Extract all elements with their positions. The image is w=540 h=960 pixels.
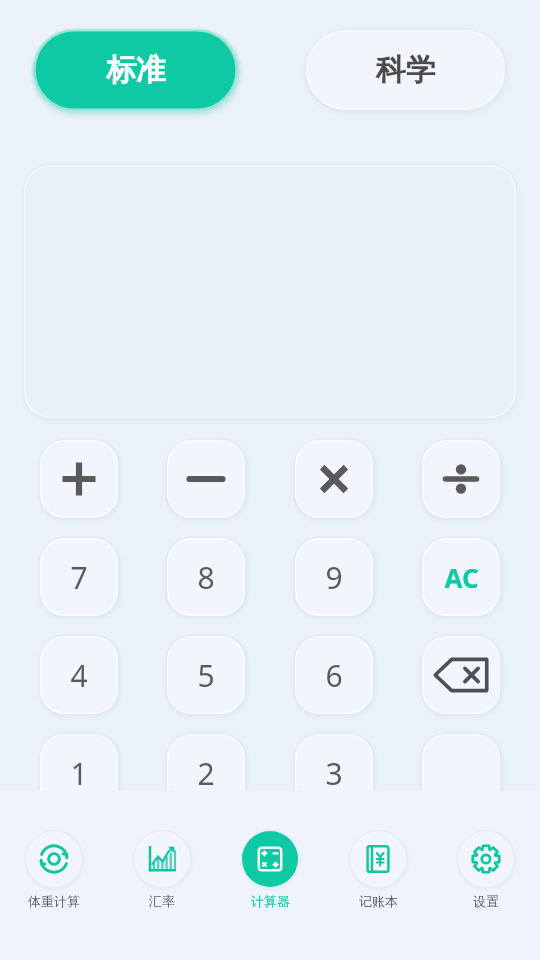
button[interactable]: 7 (40, 538, 118, 616)
button[interactable]: Subtract (167, 440, 245, 518)
button[interactable]: 科学 (306, 30, 505, 110)
button[interactable]: 记账本 (324, 825, 432, 909)
button[interactable]: 1 (40, 734, 118, 812)
staticText: 6 (325, 655, 343, 696)
button[interactable]: AC (422, 538, 500, 616)
button[interactable]: 3 (295, 734, 373, 812)
button[interactable]: Add (40, 440, 118, 518)
button[interactable]: 6 (295, 636, 373, 714)
staticText: 2 (197, 753, 215, 794)
staticText: 9 (325, 557, 343, 598)
button[interactable]: 计算器 (216, 825, 324, 909)
staticText: 1 (70, 753, 88, 794)
staticText: AC (444, 560, 479, 595)
staticText: 5 (197, 655, 215, 696)
staticText: 设置 (473, 893, 499, 909)
button[interactable]: 2 (167, 734, 245, 812)
staticText: 科学 (376, 51, 436, 89)
staticText: 标准 (106, 51, 166, 89)
staticText: 汇率 (149, 893, 175, 909)
staticText: 8 (197, 557, 215, 598)
button[interactable]: 9 (295, 538, 373, 616)
button[interactable]: Divide (422, 440, 500, 518)
staticText: 记账本 (359, 893, 398, 909)
button[interactable]: 标准 (34, 30, 237, 110)
button[interactable]: Backspace (422, 636, 500, 714)
staticText: 7 (70, 557, 88, 598)
button[interactable]: 汇率 (108, 825, 216, 909)
button[interactable]: 5 (167, 636, 245, 714)
button[interactable]: Multiply (295, 440, 373, 518)
staticText: 3 (325, 753, 343, 794)
button[interactable]: 设置 (432, 825, 540, 909)
staticText: 计算器 (251, 893, 290, 909)
staticText: 体重计算 (28, 893, 80, 909)
button[interactable]: 8 (167, 538, 245, 616)
button[interactable]: 4 (40, 636, 118, 714)
staticText: 4 (70, 655, 88, 696)
button[interactable]: 体重计算 (0, 825, 108, 909)
